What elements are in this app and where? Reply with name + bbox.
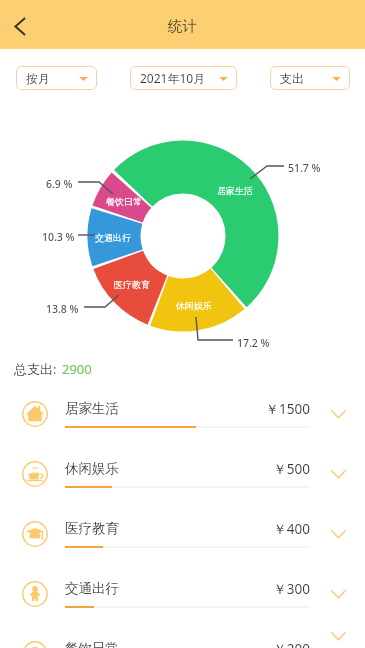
staticText: 51.7 %	[288, 161, 321, 175]
staticText: ￥300	[225, 580, 310, 598]
staticText: 居家生活	[65, 400, 119, 417]
button[interactable]: Expand 医疗教育	[315, 504, 361, 564]
button[interactable]: 餐饮日常	[0, 624, 365, 648]
staticText: 按月	[26, 71, 50, 86]
staticText: 2021年10月	[140, 70, 206, 86]
staticText: 统计	[168, 17, 197, 35]
button[interactable]: 支出	[270, 66, 350, 90]
staticText: 餐饮日常	[106, 196, 142, 207]
button[interactable]: 按月	[16, 66, 97, 90]
staticText: 居家生活	[217, 185, 253, 196]
button[interactable]: Expand 餐饮日常	[315, 624, 361, 648]
button[interactable]: Expand 居家生活	[315, 384, 361, 444]
staticText: 休闲娱乐	[176, 300, 212, 311]
staticText: 交通出行	[95, 232, 131, 243]
button[interactable]: Expand 交通出行	[315, 564, 361, 624]
button[interactable]: 居家生活	[0, 384, 365, 444]
staticText: 10.3 %	[42, 230, 75, 244]
staticText: 2900	[62, 360, 92, 378]
button[interactable]: 交通出行	[0, 564, 365, 624]
staticText: ￥500	[225, 460, 310, 478]
staticText: 医疗教育	[65, 520, 119, 537]
staticText: 总支出:	[14, 360, 57, 378]
button[interactable]: 休闲娱乐	[0, 444, 365, 504]
button[interactable]: 2021年10月	[130, 66, 237, 90]
staticText: ￥200	[225, 640, 310, 648]
staticText: 13.8 %	[46, 302, 79, 316]
staticText: ￥400	[225, 520, 310, 538]
staticText: 17.2 %	[237, 336, 270, 350]
staticText: 6.9 %	[46, 177, 73, 191]
staticText: ￥1500	[225, 400, 310, 418]
staticText: 支出	[280, 71, 304, 86]
button[interactable]: 医疗教育	[0, 504, 365, 564]
button[interactable]: Back	[0, 0, 40, 49]
staticText: 餐饮日常	[65, 640, 119, 648]
staticText: 休闲娱乐	[65, 460, 119, 477]
button[interactable]: Expand 休闲娱乐	[315, 444, 361, 504]
staticText: 医疗教育	[114, 279, 150, 290]
staticText: 交通出行	[65, 580, 119, 597]
